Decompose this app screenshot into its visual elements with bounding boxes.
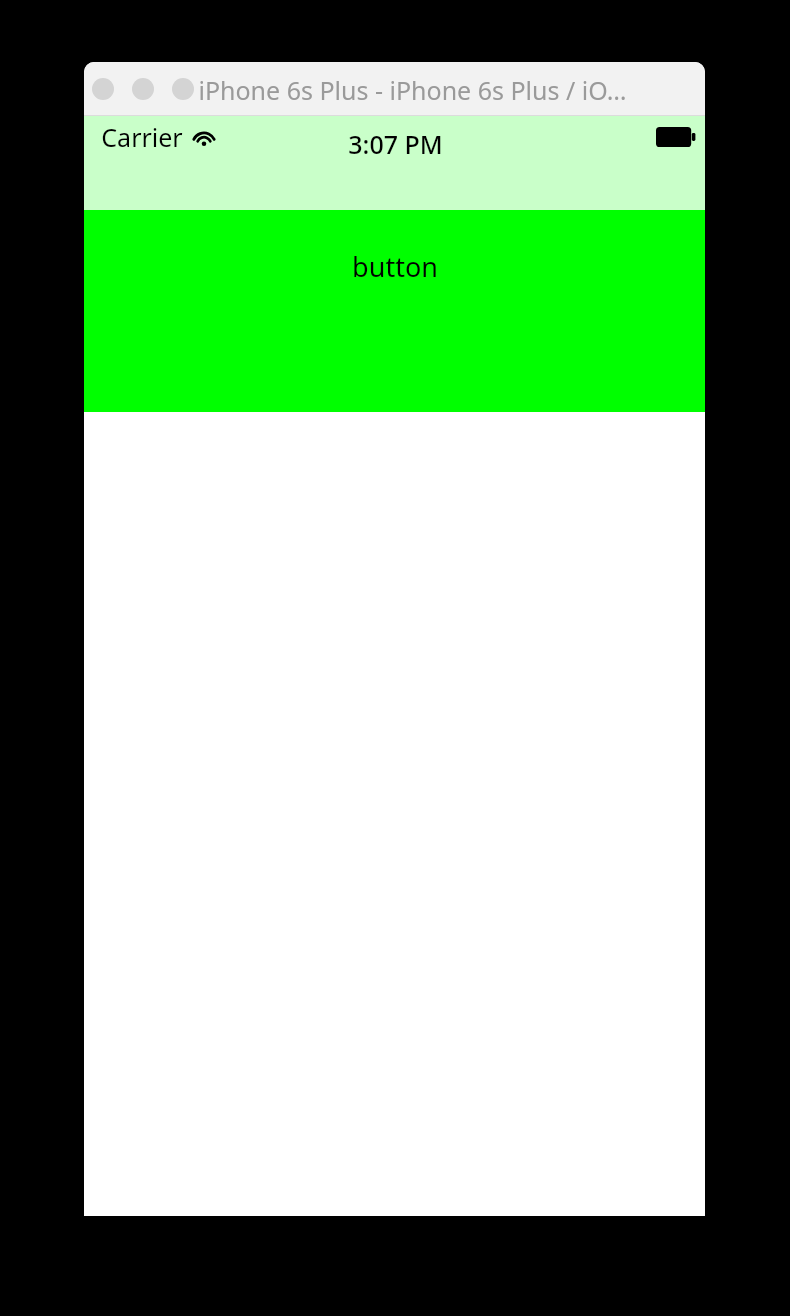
button[interactable]: Zoom <box>172 78 194 100</box>
button[interactable]: Close <box>92 78 114 100</box>
staticText: iPhone 6s Plus - iPhone 6s Plus / iO… <box>198 73 627 107</box>
button[interactable]: Minimize <box>132 78 154 100</box>
button[interactable]: button <box>84 210 705 412</box>
staticText: 3:07 PM <box>348 127 443 161</box>
other: Wi-Fi signal <box>192 125 216 149</box>
other: Battery full <box>656 127 696 147</box>
staticText: Carrier <box>101 120 183 154</box>
staticText: button <box>352 248 438 285</box>
